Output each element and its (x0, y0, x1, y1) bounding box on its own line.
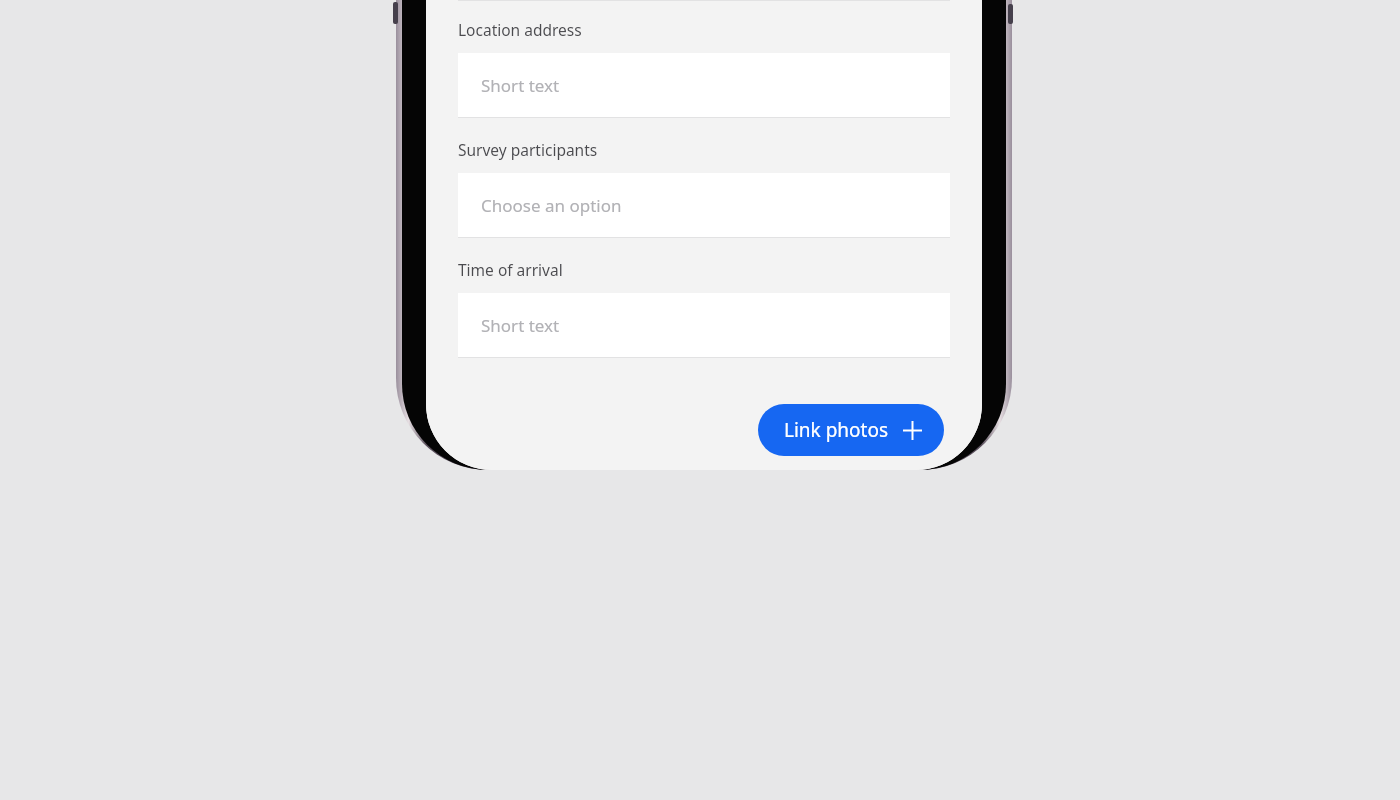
button[interactable]: Short text (458, 53, 950, 117)
button[interactable]: Choose an option (458, 173, 950, 237)
button[interactable]: Link photos (758, 404, 944, 456)
staticText: Location address (458, 19, 582, 40)
staticText: Choose an option (481, 194, 622, 217)
staticText: Survey participants (458, 139, 598, 160)
staticText: Short text (481, 74, 560, 97)
staticText: Short text (481, 314, 560, 337)
staticText: Time of arrival (458, 259, 563, 280)
staticText: Link photos (784, 417, 889, 443)
button[interactable]: Short text (458, 293, 950, 357)
